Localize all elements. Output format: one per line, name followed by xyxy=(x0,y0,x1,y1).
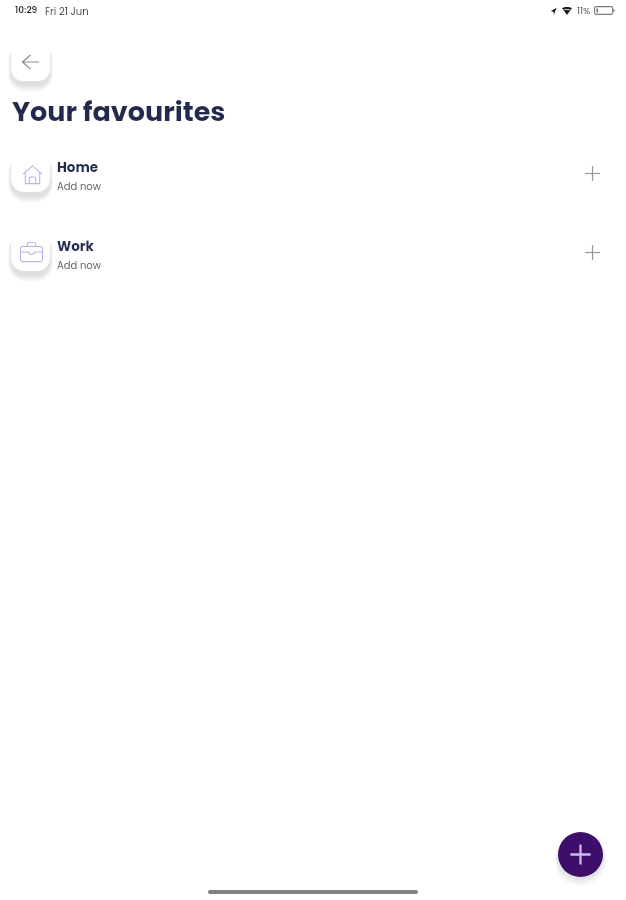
staticText: 11% xyxy=(577,4,591,17)
button[interactable]: Back xyxy=(11,42,50,81)
staticText: Add now xyxy=(57,258,101,272)
button[interactable]: Add Home xyxy=(577,158,607,188)
staticText: Home xyxy=(57,158,99,177)
button[interactable]: Work xyxy=(0,232,626,271)
staticText: Add now xyxy=(57,179,101,193)
button[interactable]: Home xyxy=(0,153,626,192)
button[interactable]: Add favourite xyxy=(558,832,603,877)
staticText: Work xyxy=(57,237,94,256)
staticText: 10:29 xyxy=(15,4,38,17)
staticText: Your favourites xyxy=(12,93,226,131)
button[interactable]: Add Work xyxy=(577,237,607,267)
staticText: Fri 21 Jun xyxy=(45,4,89,18)
